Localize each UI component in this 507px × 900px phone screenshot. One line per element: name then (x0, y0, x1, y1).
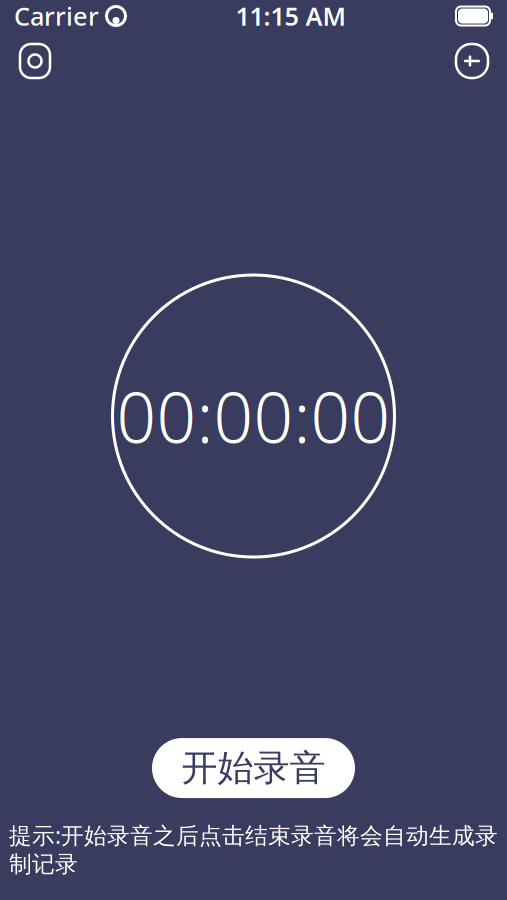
staticText: Carrier (14, 0, 99, 33)
staticText: 00:00:00 (116, 370, 390, 462)
button[interactable]: Records (445, 34, 499, 88)
button[interactable]: 开始录音 (152, 738, 355, 798)
staticText: 开始录音 (181, 746, 325, 790)
button[interactable]: Settings (8, 34, 62, 88)
staticText: 提示:开始录音之后点击结束录音将会自动生成录制记录 (9, 820, 498, 878)
staticText: 11:15 AM (235, 0, 346, 33)
